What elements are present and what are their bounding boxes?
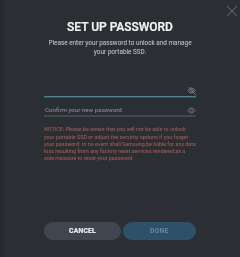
button[interactable]: Show password <box>185 84 198 97</box>
staticText: NOTICE: Please be aware that you will no… <box>44 126 196 161</box>
staticText: Confirm your new password <box>45 106 122 113</box>
staticText: DONE <box>150 227 169 235</box>
staticText: CANCEL <box>69 227 96 235</box>
staticText: SET UP PASSWORD <box>0 20 240 34</box>
button[interactable]: CANCEL <box>44 222 121 240</box>
button[interactable]: Show confirm password <box>185 104 198 117</box>
staticText: Please enter your password to unlock and… <box>45 39 195 55</box>
button[interactable]: DONE <box>123 222 196 240</box>
button[interactable]: Close <box>223 2 240 19</box>
